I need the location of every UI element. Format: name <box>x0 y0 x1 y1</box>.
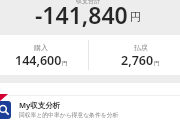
button[interactable]: My収支分析 <box>0 98 180 120</box>
staticText: -141,840 <box>35 0 128 30</box>
button[interactable]: 払戻 <box>89 35 180 75</box>
staticText: 払戻 <box>134 43 148 52</box>
staticText: 収支合計 <box>76 0 100 5</box>
staticText: 回収率と的中率から得意な条件を分析 <box>19 111 119 118</box>
button[interactable]: 購入 <box>0 35 88 75</box>
staticText: 2,760 <box>121 52 154 69</box>
staticText: 144,600 <box>15 52 62 69</box>
staticText: My収支分析 <box>19 100 61 110</box>
other: My収支分析 <box>0 101 11 119</box>
staticText: 円 <box>62 60 68 67</box>
staticText: 円 <box>154 60 160 67</box>
staticText: 円 <box>130 10 141 24</box>
staticText: 購入 <box>34 43 48 52</box>
